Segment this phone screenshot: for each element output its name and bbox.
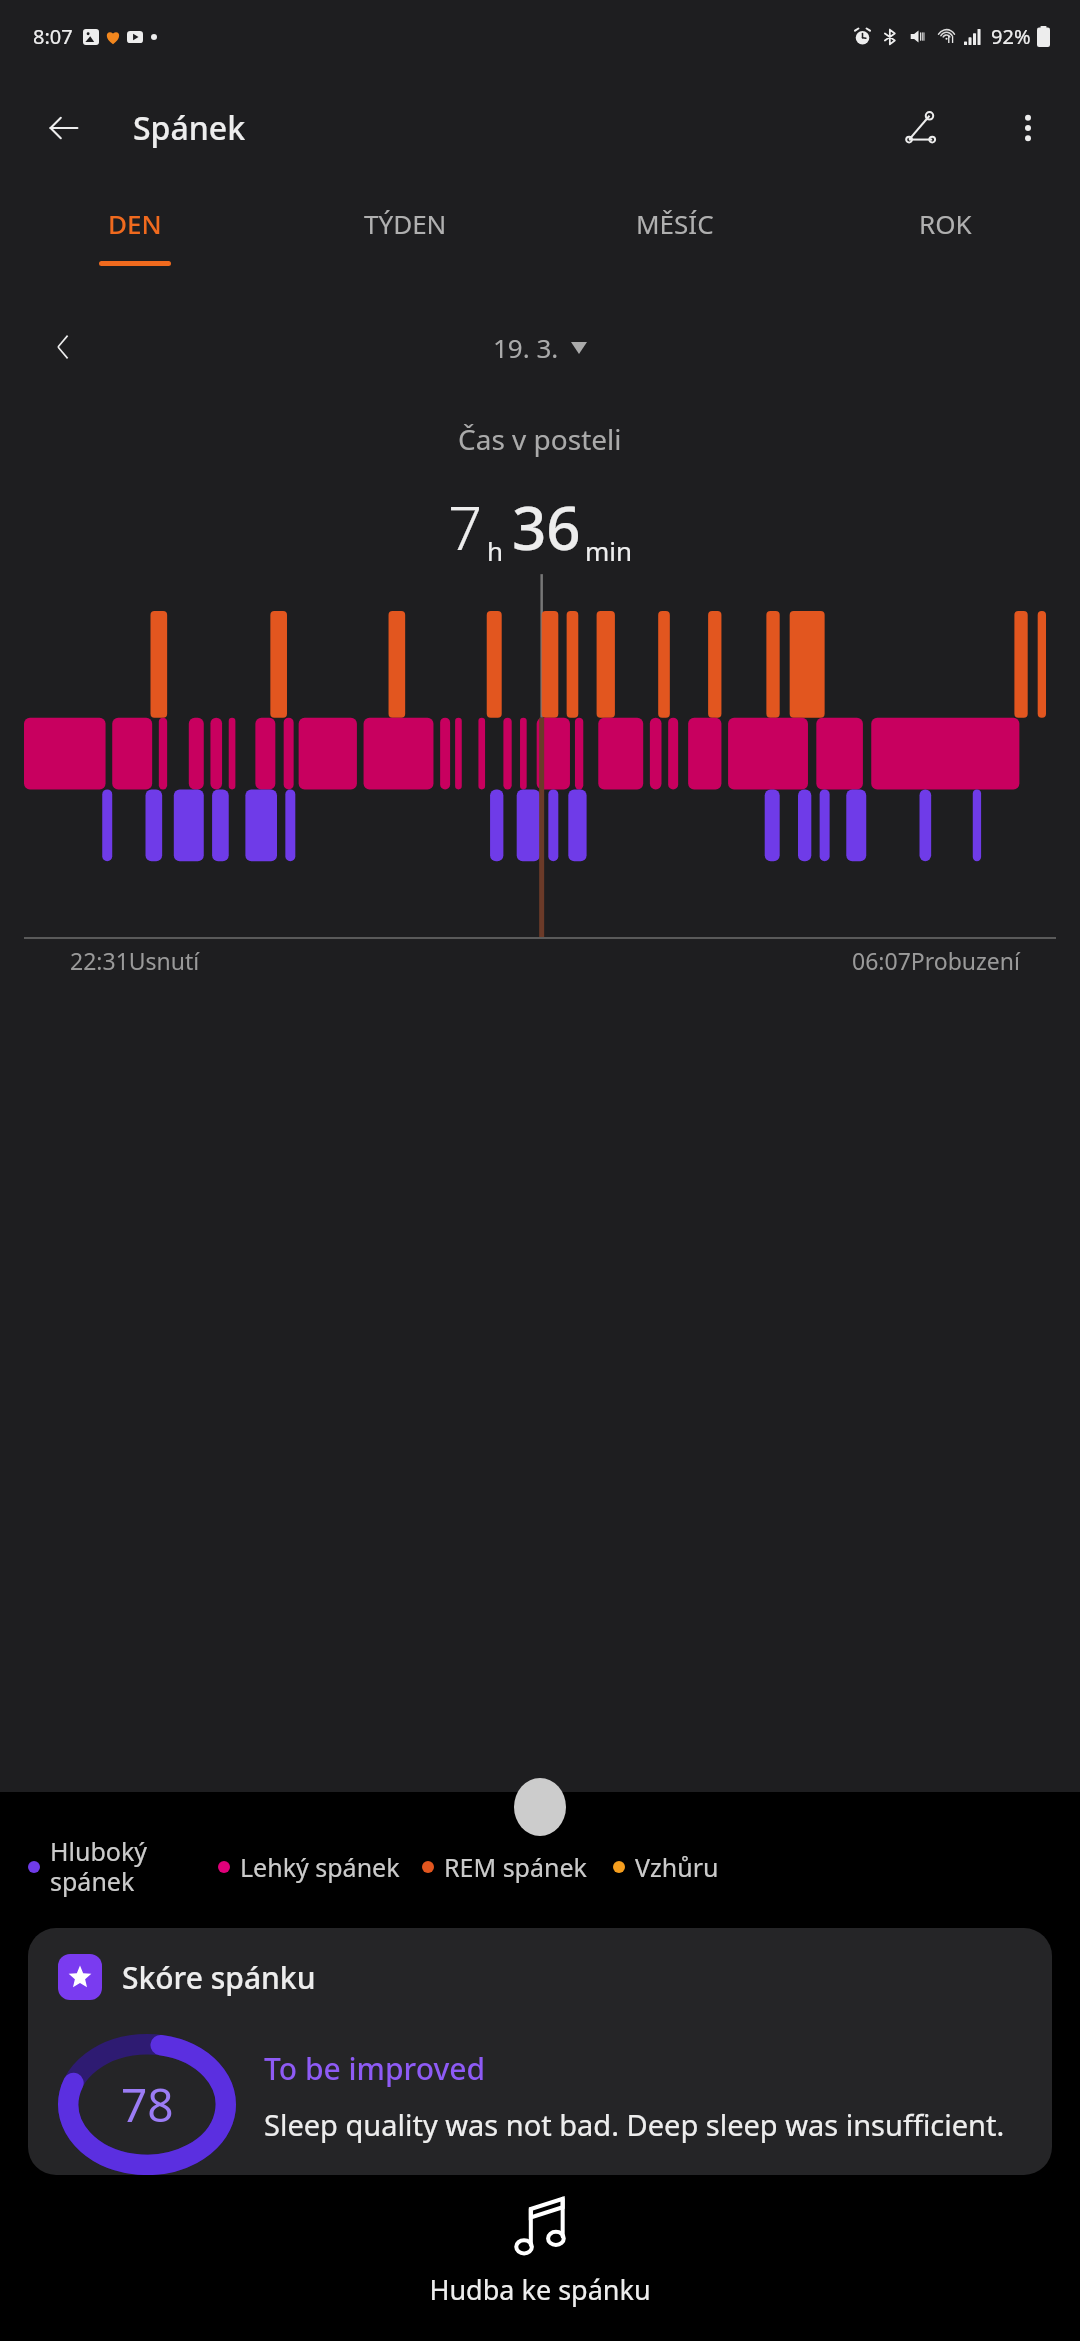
staticText: To be improved (264, 2048, 486, 2089)
staticText: 78 (121, 2073, 174, 2136)
staticText: Skóre spánku (122, 1957, 316, 1998)
button[interactable]: ROK (810, 184, 1080, 302)
staticText: ROK (919, 206, 972, 241)
button[interactable]: More options (1004, 104, 1052, 152)
button[interactable]: Share (897, 103, 947, 153)
staticText: Hudba ke spánku (429, 2271, 651, 2308)
staticText: TÝDEN (364, 206, 447, 241)
staticText: Sleep quality was not bad. Deep sleep wa… (264, 2105, 1005, 2144)
button[interactable]: Lehký spánek (218, 1850, 400, 1884)
button[interactable]: Skóre spánku (28, 1928, 1052, 2175)
staticText: Čas v posteli (458, 420, 622, 458)
staticText: 92% (991, 23, 1031, 50)
button[interactable]: Previous day (36, 319, 92, 375)
staticText: h (487, 533, 504, 568)
staticText: Vzhůru (635, 1850, 719, 1884)
staticText: DEN (108, 206, 162, 241)
button[interactable]: REM spánek (422, 1850, 587, 1884)
staticText: 22:31Usnutí (70, 945, 200, 976)
button[interactable]: 19. 3. (493, 330, 587, 365)
staticText: 19. 3. (493, 330, 559, 365)
staticText: REM spánek (444, 1850, 587, 1884)
staticText: 8:07 (33, 23, 73, 50)
staticText: Spánek (133, 106, 246, 150)
button[interactable]: Back (40, 104, 88, 152)
button[interactable]: DEN (0, 184, 270, 302)
button[interactable]: Vzhůru (613, 1850, 719, 1884)
staticText: Hluboký spánek (50, 1834, 148, 1899)
staticText: min (585, 533, 633, 568)
staticText: 06:07Probuzení (852, 945, 1020, 976)
staticText: MĚSÍC (636, 206, 714, 241)
button[interactable]: Hudba ke spánku (0, 2175, 1080, 2341)
staticText: 36 (512, 486, 581, 568)
staticText: Lehký spánek (240, 1850, 400, 1884)
button[interactable]: MĚSÍC (540, 184, 810, 302)
button[interactable]: Hluboký spánek (28, 1834, 218, 1899)
staticText: 7 (448, 486, 483, 568)
button[interactable]: TÝDEN (270, 184, 540, 302)
